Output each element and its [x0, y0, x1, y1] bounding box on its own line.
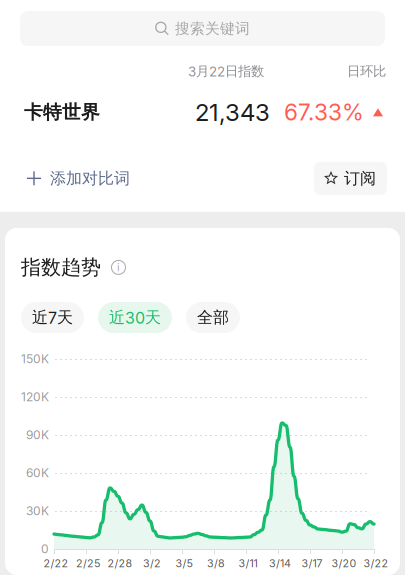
staticText: 全部 [197, 307, 229, 328]
button[interactable]: 搜索关键词 [20, 11, 385, 46]
staticText: 3/8 [207, 557, 225, 570]
staticText: 搜索关键词 [175, 19, 250, 38]
staticText: 21,343 [195, 98, 270, 127]
staticText: 3/5 [175, 557, 192, 570]
button[interactable]: 近30天 [98, 302, 172, 333]
staticText: 2/22 [43, 557, 68, 570]
staticText: 3月22日指数 [188, 63, 264, 80]
staticText: 3/22 [363, 557, 388, 570]
staticText: 90K [26, 428, 49, 442]
staticText: 120K [21, 390, 49, 404]
staticText: 2/28 [107, 557, 132, 570]
staticText: 67.33% [284, 99, 364, 126]
staticText: 近30天 [109, 307, 161, 328]
staticText: 2/25 [76, 557, 100, 570]
staticText: 卡特世界 [24, 101, 100, 124]
button[interactable]: 近7天 [21, 302, 84, 333]
staticText: 30K [26, 504, 49, 518]
staticText: 60K [26, 466, 49, 480]
staticText: 3/11 [238, 557, 257, 570]
staticText: 3/20 [331, 557, 356, 570]
button[interactable]: 全部 [186, 302, 240, 333]
button[interactable]: 订阅 [314, 162, 387, 195]
staticText: 3/2 [143, 557, 161, 570]
staticText: i [117, 261, 120, 274]
staticText: 添加对比词 [50, 168, 130, 188]
staticText: 0 [41, 542, 49, 556]
staticText: 日环比 [347, 63, 386, 80]
staticText: 指数趋势 [21, 255, 101, 280]
button[interactable]: 添加对比词 [27, 168, 130, 188]
staticText: 近7天 [32, 307, 73, 328]
staticText: 订阅 [344, 168, 376, 188]
staticText: 3/14 [269, 557, 291, 570]
staticText: 3/17 [301, 557, 322, 570]
staticText: 150K [21, 352, 49, 366]
